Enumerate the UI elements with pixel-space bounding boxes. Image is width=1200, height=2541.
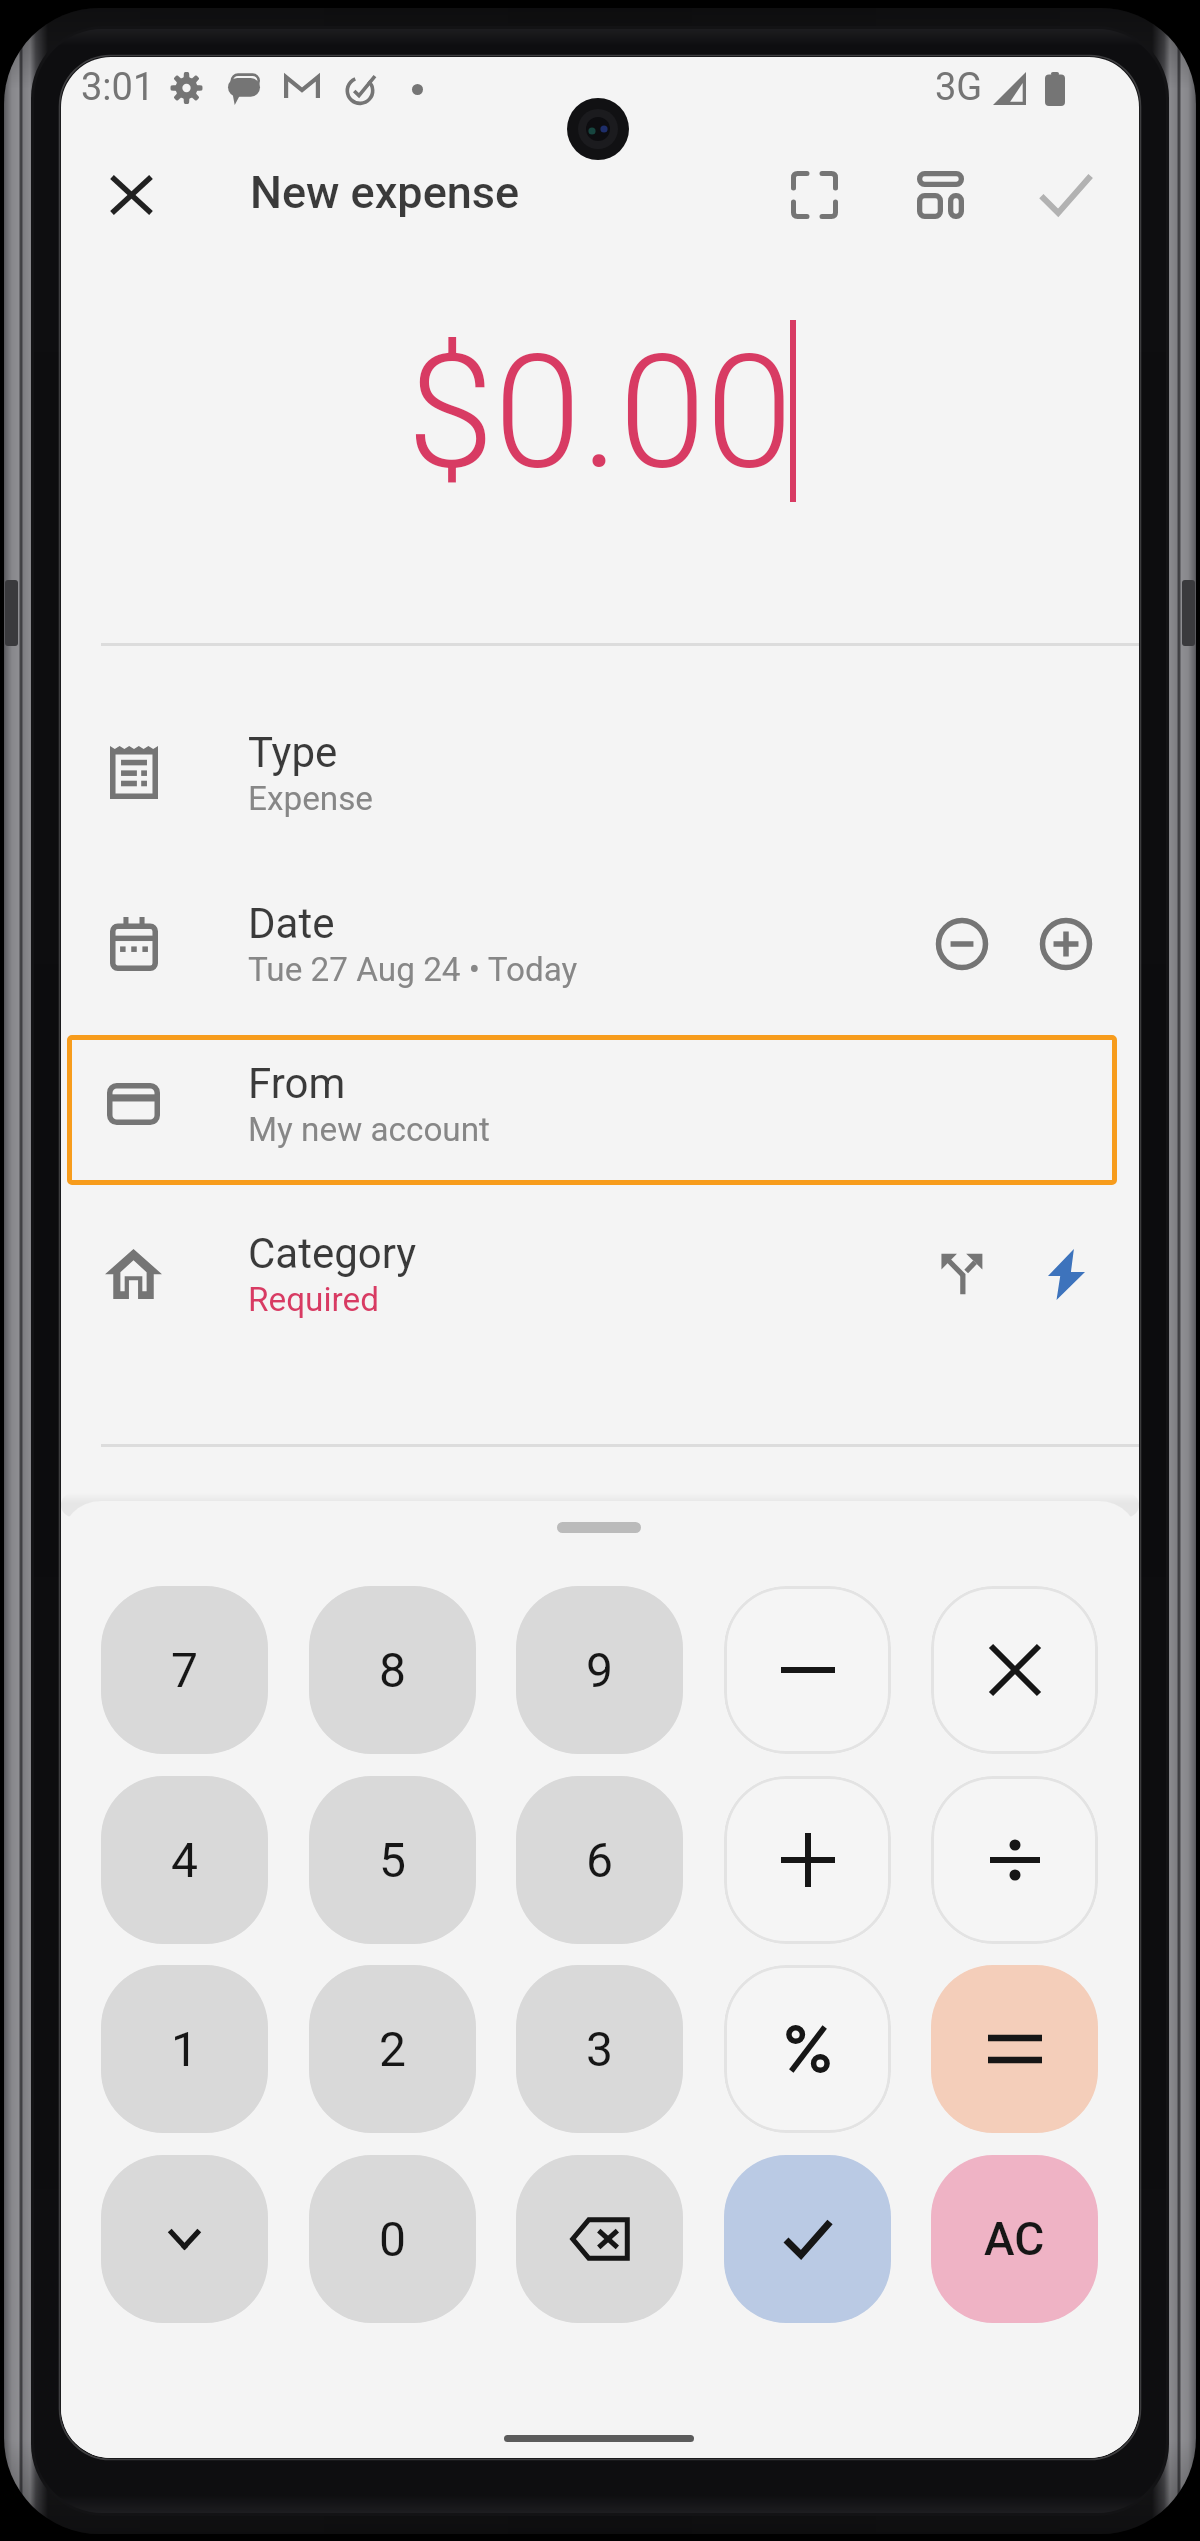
staticText: 1 bbox=[171, 2021, 198, 2077]
staticText: 5 bbox=[379, 1832, 406, 1888]
button[interactable]: Multiply bbox=[931, 1586, 1098, 1754]
button[interactable]: Equals bbox=[931, 1965, 1098, 2133]
button[interactable]: 4 bbox=[101, 1776, 268, 1944]
staticText: 4 bbox=[171, 1832, 198, 1888]
staticText: 3 bbox=[586, 2021, 613, 2077]
staticText: $0.00 bbox=[407, 320, 793, 504]
button[interactable]: 3 bbox=[516, 1965, 683, 2133]
staticText: Tue 27 Aug 24 • Today bbox=[248, 950, 578, 989]
staticText: Required bbox=[248, 1280, 379, 1319]
button[interactable]: 2 bbox=[309, 1965, 476, 2133]
button[interactable]: Category bbox=[61, 1202, 1139, 1345]
button[interactable]: AC bbox=[931, 2155, 1098, 2323]
staticText: Category bbox=[248, 1229, 417, 1278]
button[interactable]: 5 bbox=[309, 1776, 476, 1944]
button[interactable]: From bbox=[61, 1032, 1139, 1175]
button[interactable]: 0 bbox=[309, 2155, 476, 2323]
staticText: From bbox=[248, 1059, 346, 1108]
staticText: New expense bbox=[250, 166, 520, 219]
staticText: My new account bbox=[248, 1110, 491, 1149]
staticText: 3:01 bbox=[81, 65, 155, 110]
button[interactable]: Divide bbox=[931, 1776, 1098, 1944]
button[interactable]: 9 bbox=[516, 1586, 683, 1754]
button[interactable]: Plus bbox=[724, 1776, 891, 1944]
button[interactable]: 1 bbox=[101, 1965, 268, 2133]
staticText: 9 bbox=[586, 1642, 613, 1698]
button[interactable]: Layout bbox=[898, 153, 982, 237]
button[interactable]: Previous day bbox=[917, 899, 1007, 989]
button[interactable]: Date bbox=[61, 872, 1139, 1015]
button[interactable]: Type bbox=[61, 701, 1139, 844]
staticText: 0 bbox=[379, 2211, 406, 2267]
staticText: Type bbox=[248, 728, 338, 777]
button[interactable]: Confirm bbox=[724, 2155, 891, 2323]
staticText: Date bbox=[248, 899, 335, 948]
staticText: 2 bbox=[379, 2021, 406, 2077]
button[interactable]: Next day bbox=[1021, 899, 1111, 989]
button[interactable]: 8 bbox=[309, 1586, 476, 1754]
button[interactable]: Quick add bbox=[1021, 1229, 1111, 1319]
button[interactable]: Minus bbox=[724, 1586, 891, 1754]
button[interactable]: 6 bbox=[516, 1776, 683, 1944]
button[interactable]: Shuffle category bbox=[917, 1229, 1007, 1319]
staticText: 8 bbox=[379, 1642, 406, 1698]
staticText: 6 bbox=[586, 1832, 613, 1888]
button[interactable]: 7 bbox=[101, 1586, 268, 1754]
button[interactable]: Close bbox=[89, 153, 173, 237]
staticText: 3G bbox=[935, 65, 983, 110]
button[interactable]: Backspace bbox=[516, 2155, 683, 2323]
button[interactable]: Fullscreen bbox=[772, 153, 856, 237]
staticText: Expense bbox=[248, 779, 374, 818]
button[interactable]: Percent bbox=[724, 1965, 891, 2133]
staticText: 7 bbox=[171, 1642, 198, 1698]
staticText: AC bbox=[984, 2212, 1045, 2266]
button[interactable]: Hide keypad bbox=[101, 2155, 268, 2323]
button[interactable]: Save bbox=[1024, 153, 1108, 237]
